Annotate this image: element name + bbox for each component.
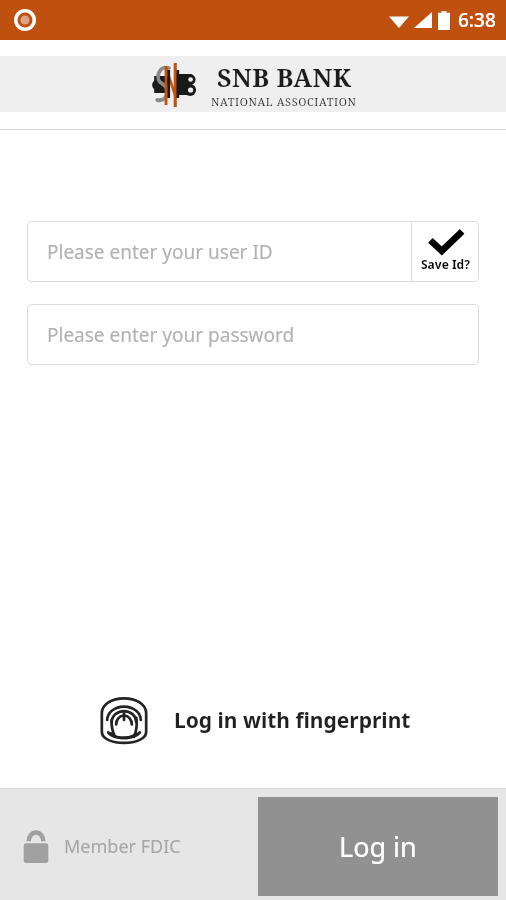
button[interactable]: Save Id xyxy=(412,221,479,282)
staticText: Member FDIC xyxy=(64,834,181,859)
button[interactable]: Log in xyxy=(258,797,498,896)
staticText: NATIONAL ASSOCIATION xyxy=(211,94,357,109)
staticText: Log in with fingerprint xyxy=(174,706,411,735)
button[interactable]: Please enter your password xyxy=(27,304,479,365)
staticText: Please enter your user ID xyxy=(47,239,273,265)
staticText: SNB BANK xyxy=(217,60,352,94)
other: Log in with fingerprint xyxy=(96,692,152,748)
staticText: Log in xyxy=(339,828,417,865)
staticText: 6:38 xyxy=(458,7,496,33)
staticText: Save Id? xyxy=(421,256,470,272)
button[interactable]: Log in with fingerprint xyxy=(0,688,506,752)
button[interactable]: Please enter your user ID xyxy=(27,221,411,282)
staticText: Please enter your password xyxy=(47,322,295,348)
button[interactable]: Member FDIC xyxy=(22,829,181,863)
